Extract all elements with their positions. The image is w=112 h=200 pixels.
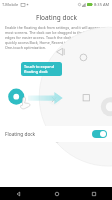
button[interactable]: Home <box>38 187 75 200</box>
button[interactable]: Recents <box>75 187 112 200</box>
staticText: Floating dock <box>36 13 77 22</box>
staticText: Enable the floating dock from settings, … <box>5 25 107 50</box>
button[interactable]: Back <box>0 187 38 200</box>
staticText: Touch to expand floating dock <box>24 64 54 74</box>
button[interactable]: Floating dock on <box>92 130 107 138</box>
button[interactable]: Touch to expand floating dock <box>21 62 62 76</box>
staticText: T-Mobile <box>2 2 19 7</box>
button[interactable]: Floating dock <box>0 126 112 142</box>
staticText: 8:35 AM <box>94 2 110 7</box>
staticText: Floating dock <box>5 131 36 138</box>
